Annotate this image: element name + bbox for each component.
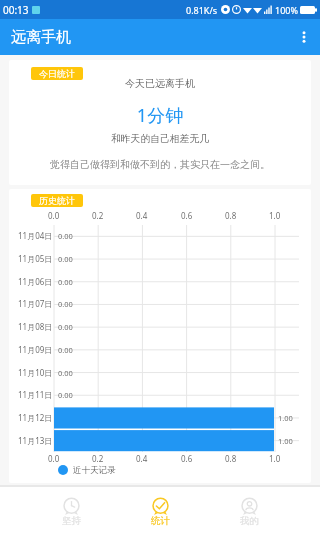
staticText: 0.00 [58,299,73,309]
staticText: 11月06日 [18,276,53,287]
staticText: 00:13 [3,3,29,17]
staticText: 1.00 [278,413,293,423]
staticText: 11月11日 [18,389,53,400]
staticText: 0.00 [58,277,73,287]
staticText: 1.0 [269,210,281,221]
staticText: 1分钟 [9,103,311,128]
staticText: 0.00 [58,368,73,378]
staticText: 0.2 [92,453,104,464]
staticText: 0.00 [58,254,73,264]
staticText: 和昨天的自己相差无几 [9,133,311,145]
staticText: 今天已远离手机 [9,77,311,90]
staticText: 11月08日 [18,321,53,332]
staticText: 0.00 [58,345,73,355]
staticText: 0.8 [225,210,237,221]
staticText: 0.8 [225,453,237,464]
button[interactable]: 我的 [219,487,279,533]
staticText: 坚持 [62,515,81,527]
button[interactable]: More options [288,19,320,55]
staticText: 100% [275,4,298,16]
staticText: 0.0 [48,453,60,464]
staticText: 11月05日 [18,253,53,264]
staticText: 统计 [151,515,170,527]
staticText: 0.00 [58,231,73,241]
staticText: 0.81K/s [186,4,218,16]
staticText: 0.6 [181,210,193,221]
staticText: 11月13日 [18,435,53,446]
staticText: 11月04日 [18,230,53,241]
staticText: 今日统计 [39,68,75,79]
button[interactable]: 统计 [130,487,190,533]
staticText: 0.00 [58,390,73,400]
staticText: 历史统计 [39,195,75,206]
staticText: 0.4 [136,453,148,464]
staticText: 0.2 [92,210,104,221]
staticText: 0.6 [181,453,193,464]
staticText: 11月10日 [18,367,53,378]
staticText: 觉得自己做得到和做不到的，其实只在一念之间。 [9,158,311,171]
staticText: 近十天记录 [73,465,116,476]
staticText: 1.0 [269,453,281,464]
staticText: 我的 [240,515,259,527]
staticText: 0.0 [48,210,60,221]
staticText: 0.00 [58,322,73,332]
staticText: 1.00 [278,436,293,446]
staticText: 11月09日 [18,344,53,355]
staticText: 远离手机 [11,28,71,47]
staticText: 0.4 [136,210,148,221]
staticText: 11月07日 [18,298,53,309]
button[interactable]: 坚持 [41,487,101,533]
staticText: 11月12日 [18,412,53,423]
